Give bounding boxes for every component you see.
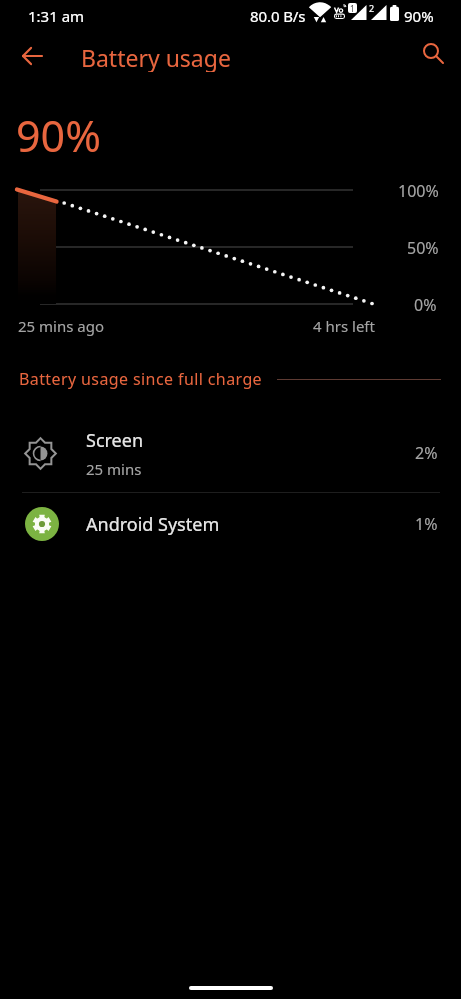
staticText: 0% — [414, 294, 437, 316]
staticText: 80.0 B/s — [250, 6, 306, 26]
staticText: Battery usage since full charge — [19, 368, 263, 390]
button[interactable]: Screen — [0, 414, 461, 492]
staticText: 1 — [350, 3, 355, 13]
staticText: 90% — [404, 6, 434, 26]
staticText: Android System — [86, 512, 415, 537]
staticText: Screen — [86, 428, 144, 453]
staticText: 1% — [415, 513, 438, 535]
staticText: 25 mins — [86, 459, 142, 479]
staticText: 90% — [16, 106, 101, 165]
staticText: 4 hrs left — [313, 316, 375, 336]
staticText: 100% — [398, 180, 439, 202]
button[interactable]: Android System — [0, 493, 461, 555]
staticText: 25 mins ago — [18, 316, 105, 336]
staticText: 1:31 am — [28, 6, 85, 26]
button[interactable]: Search — [410, 38, 456, 68]
staticText: 2% — [415, 442, 438, 464]
staticText: Battery usage — [81, 42, 231, 72]
staticText: 2 — [369, 2, 375, 14]
staticText: 50% — [407, 237, 439, 259]
button[interactable]: Back — [9, 41, 55, 71]
